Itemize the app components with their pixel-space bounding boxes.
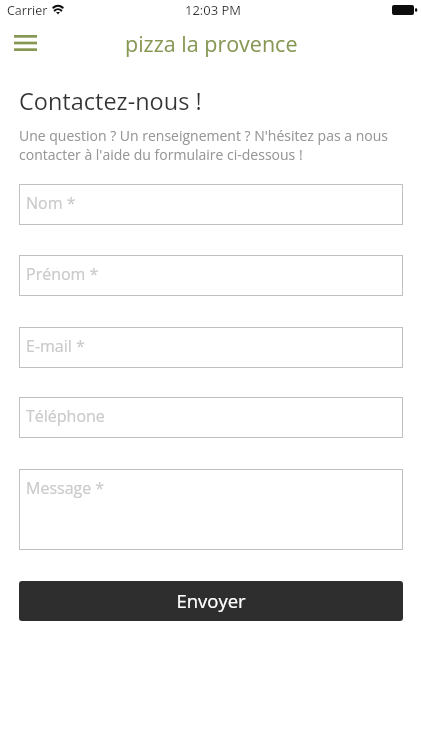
- staticText: Contactez-nous !: [19, 85, 202, 117]
- staticText: Une question ? Un renseignement ? N'hési…: [19, 126, 404, 164]
- staticText: Nom *: [26, 192, 76, 214]
- button[interactable]: E-mail *: [19, 327, 403, 368]
- staticText: 12:03 PM: [185, 1, 242, 19]
- button[interactable]: Prénom *: [19, 255, 403, 296]
- button[interactable]: Message *: [19, 469, 403, 550]
- staticText: Prénom *: [26, 263, 99, 285]
- staticText: E-mail *: [26, 335, 85, 357]
- button[interactable]: Menu: [5, 25, 45, 61]
- staticText: Téléphone: [26, 405, 105, 427]
- button[interactable]: Nom *: [19, 184, 403, 225]
- button[interactable]: Envoyer: [19, 581, 403, 621]
- button[interactable]: Téléphone: [19, 397, 403, 438]
- staticText: pizza la provence: [125, 29, 298, 58]
- staticText: Message *: [26, 477, 105, 499]
- staticText: Envoyer: [176, 588, 246, 613]
- staticText: Carrier: [7, 2, 48, 19]
